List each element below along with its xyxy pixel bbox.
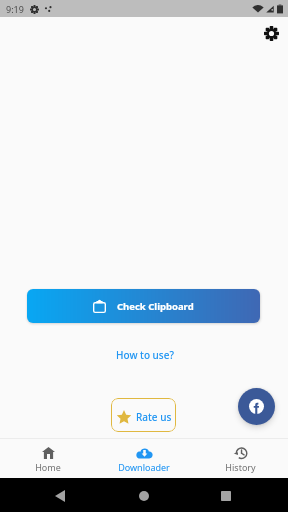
button[interactable]: Home xyxy=(132,484,156,508)
staticText: 9:19 xyxy=(6,3,24,15)
staticText: Home xyxy=(35,461,61,473)
button[interactable]: Check Clipboard xyxy=(27,289,260,323)
button[interactable]: Downloader xyxy=(96,439,192,478)
button[interactable]: How to use? xyxy=(112,345,178,365)
staticText: Downloader xyxy=(118,461,170,473)
staticText: How to use? xyxy=(116,348,174,362)
button[interactable]: Recent apps xyxy=(214,484,238,508)
staticText: Rate us xyxy=(136,410,172,424)
staticText: History xyxy=(225,461,256,473)
button[interactable]: Back xyxy=(48,484,72,508)
staticText: Check Clipboard xyxy=(117,300,194,313)
button[interactable]: History xyxy=(192,439,288,478)
button[interactable]: Facebook xyxy=(238,388,275,425)
button[interactable]: Home xyxy=(0,439,96,478)
button[interactable]: Rate us xyxy=(111,398,176,432)
button[interactable]: Settings xyxy=(255,17,287,49)
